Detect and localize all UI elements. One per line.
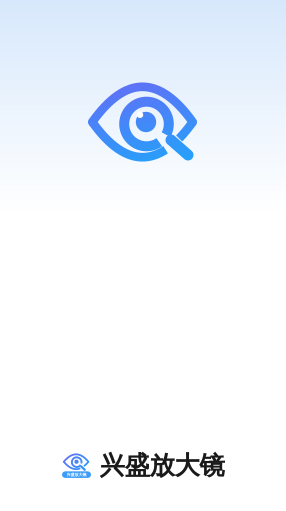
staticText: 兴盛放大镜 — [66, 472, 86, 477]
staticText: 兴盛放大镜 — [99, 450, 224, 481]
